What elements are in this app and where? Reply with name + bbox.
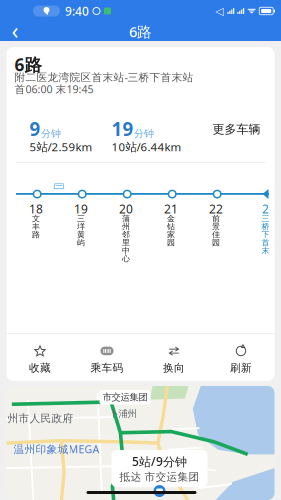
staticText: 温州印象城MEGA bbox=[13, 442, 99, 456]
staticText: 家 bbox=[167, 229, 175, 240]
staticText: 2 bbox=[262, 201, 269, 217]
staticText: 19 bbox=[111, 116, 133, 141]
button[interactable]: 换向 bbox=[140, 343, 207, 375]
staticText: 佳 bbox=[212, 229, 220, 240]
staticText: 10站/6.44km bbox=[111, 139, 181, 155]
staticText: 桥 bbox=[261, 221, 269, 232]
staticText: 19 bbox=[74, 201, 88, 217]
staticText: ‹ bbox=[11, 15, 18, 45]
staticText: 乘车码 bbox=[90, 361, 123, 374]
staticText: 三 bbox=[77, 213, 85, 224]
staticText: 蒲 bbox=[122, 213, 130, 224]
staticText: 9:40 bbox=[65, 3, 89, 19]
button[interactable]: 乘车码 bbox=[73, 343, 140, 375]
staticText: 园 bbox=[212, 237, 220, 248]
staticText: 里 bbox=[122, 237, 130, 248]
staticText: 5站/2.59km bbox=[29, 139, 92, 155]
staticText: 金 bbox=[167, 213, 175, 224]
staticText: 屿 bbox=[77, 237, 85, 248]
staticText: 心 bbox=[122, 253, 130, 264]
staticText: 州市人民政府 bbox=[7, 412, 73, 425]
staticText: 卜浦州 bbox=[109, 408, 136, 419]
staticText: 分钟 bbox=[41, 127, 61, 140]
staticText: 文 bbox=[32, 213, 40, 224]
staticText: 20 bbox=[119, 201, 133, 217]
button[interactable]: 更多车辆 bbox=[208, 118, 264, 141]
staticText: 6路 bbox=[14, 53, 41, 76]
staticText: 黄 bbox=[77, 229, 85, 240]
staticText: 末 bbox=[261, 245, 269, 256]
staticText: 钻 bbox=[167, 221, 175, 232]
staticText: 前 bbox=[212, 213, 220, 224]
staticText: 抵达 市交运集团 bbox=[119, 470, 199, 483]
staticText: 换向 bbox=[163, 361, 185, 374]
staticText: 分钟 bbox=[134, 127, 154, 140]
button[interactable]: Back bbox=[0, 22, 30, 41]
staticText: 22 bbox=[209, 201, 223, 217]
staticText: 首06:00 末19:45 bbox=[14, 82, 93, 96]
staticText: 21 bbox=[164, 201, 178, 217]
staticText: 路 bbox=[32, 229, 40, 240]
staticText: 丰 bbox=[32, 221, 40, 232]
staticText: 邻 bbox=[122, 229, 130, 240]
staticText: 18 bbox=[29, 201, 43, 217]
staticText: 景 bbox=[212, 221, 220, 232]
staticText: 5站/9分钟 bbox=[132, 453, 187, 469]
staticText: 9 bbox=[29, 116, 40, 141]
staticText: 首 bbox=[261, 237, 269, 248]
staticText: 三 bbox=[261, 213, 269, 224]
staticText: 更多车辆 bbox=[212, 122, 260, 137]
staticText: 市交运集团 bbox=[102, 391, 147, 403]
staticText: 刷新 bbox=[230, 361, 252, 374]
button[interactable]: 收藏 bbox=[6, 343, 73, 375]
staticText: 附二医龙湾院区首末站-三桥下首末站 bbox=[14, 70, 193, 84]
staticText: 园 bbox=[167, 237, 175, 248]
staticText: 下 bbox=[261, 229, 269, 240]
staticText: 收藏 bbox=[29, 361, 51, 374]
staticText: 垟 bbox=[77, 221, 85, 232]
staticText: ◁ bbox=[215, 5, 223, 17]
staticText: 6路 bbox=[129, 22, 152, 41]
button[interactable]: 刷新 bbox=[207, 343, 274, 375]
staticText: 中 bbox=[122, 245, 130, 256]
staticText: 州 bbox=[122, 221, 130, 232]
